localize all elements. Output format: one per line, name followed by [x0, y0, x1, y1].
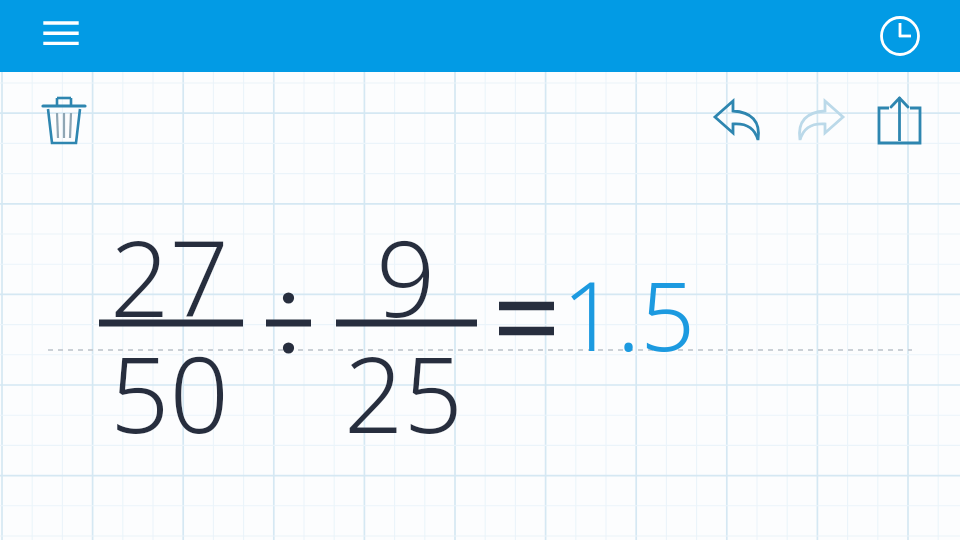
staticText: 1.5 [562, 248, 696, 379]
button[interactable]: 9 [376, 206, 436, 348]
button[interactable]: Share [872, 92, 928, 150]
button[interactable]: Redo [792, 92, 848, 148]
button[interactable]: Delete [36, 92, 92, 152]
button[interactable]: 50 [110, 322, 229, 464]
button[interactable]: 27 [110, 206, 229, 348]
button[interactable]: Undo [710, 92, 766, 148]
button[interactable]: 25 [344, 322, 463, 464]
button[interactable]: History [872, 8, 928, 64]
button[interactable]: Menu [32, 8, 92, 64]
